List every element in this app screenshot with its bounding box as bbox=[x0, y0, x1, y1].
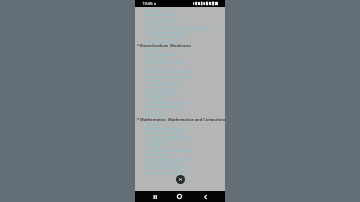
button[interactable]: Virology bbox=[135, 78, 225, 82]
staticText: Enzymes bbox=[147, 109, 162, 113]
button[interactable]: Applied Mathematics bbox=[135, 126, 225, 130]
staticText: Numerical Analysis bbox=[147, 161, 180, 165]
staticText: Computer Science Engg. bbox=[147, 30, 189, 34]
button[interactable]: Agricultural Biotechnology bbox=[135, 74, 225, 78]
button[interactable]: Genomics bbox=[135, 65, 225, 69]
button[interactable]: Enzymes bbox=[135, 109, 225, 113]
button[interactable]: Aerospace Engg. bbox=[135, 12, 225, 16]
staticText: Biochemistry bbox=[147, 56, 170, 60]
staticText: Physics bbox=[147, 8, 160, 12]
button[interactable]: Algebra bbox=[135, 122, 225, 126]
staticText: Molecular Biology (MB) bbox=[147, 60, 186, 64]
staticText: Genomics bbox=[147, 65, 164, 69]
button[interactable]: Differential Equations (DE) bbox=[135, 157, 225, 161]
staticText: Aerospace Engg. bbox=[147, 12, 176, 16]
staticText: Number Theory (NT) bbox=[147, 130, 182, 134]
staticText: Statistics and Data Science bbox=[147, 135, 192, 139]
staticText: Industrial Biotechnology bbox=[147, 100, 189, 104]
staticText: Differential Equations (DE) bbox=[147, 157, 192, 161]
button[interactable]: Structural Biology (S) bbox=[135, 82, 225, 86]
staticText: Mathematical Modelling bbox=[147, 170, 188, 174]
button[interactable]: Biotechnology, Biophysics bbox=[135, 43, 225, 47]
staticText: Medical Biotechnology (M) bbox=[147, 69, 192, 73]
button[interactable]: Number Theory (NT) bbox=[135, 130, 225, 134]
staticText: Bioinformatics (BI) bbox=[147, 87, 179, 91]
staticText: Virology bbox=[147, 78, 161, 82]
button[interactable]: Chemistry (C) bbox=[135, 21, 225, 25]
button[interactable]: Optimization bbox=[135, 152, 225, 156]
staticText: Biotechnology (B) bbox=[147, 52, 177, 56]
button[interactable]: Discrete Mathematics bbox=[135, 165, 225, 169]
button[interactable]: Immunology (I) bbox=[135, 91, 225, 95]
button[interactable]: Mathematical Modelling bbox=[135, 170, 225, 174]
button[interactable]: Home bbox=[174, 191, 185, 202]
staticText: Probability (P) bbox=[147, 139, 171, 143]
button[interactable]: Recent apps bbox=[149, 191, 160, 202]
staticText: Immunology (I) bbox=[147, 91, 174, 95]
staticText: Structural Biology (S) bbox=[147, 82, 183, 86]
staticText: Agricultural Biotechnology bbox=[147, 74, 192, 78]
button[interactable]: Bioinformatics (BI) bbox=[135, 87, 225, 91]
staticText: Mathematics, Mathematics and Computing bbox=[140, 117, 225, 121]
button[interactable]: Computational Biology bbox=[135, 104, 225, 108]
button[interactable]: Mathematics, Mathematics and Computing bbox=[135, 117, 225, 121]
staticText: Algebra bbox=[147, 122, 161, 126]
staticText: Computational Biology bbox=[147, 104, 186, 108]
button[interactable]: Biotechnology (B) bbox=[135, 52, 225, 56]
button[interactable]: Computing and Algorithms bbox=[135, 148, 225, 152]
staticText: Ocean Engg. and Naval bbox=[147, 34, 187, 38]
button[interactable]: Topology bbox=[135, 143, 225, 147]
staticText: Topology bbox=[147, 143, 163, 147]
staticText: Electronics and Electrical Comm. Engg. bbox=[147, 26, 213, 30]
button[interactable]: Civil Engineering (C) bbox=[135, 17, 225, 21]
button[interactable]: Numerical Analysis bbox=[135, 161, 225, 165]
staticText: Biology bbox=[147, 47, 160, 51]
button[interactable]: Molecular Biology (MB) bbox=[135, 60, 225, 64]
staticText: Biophysics bbox=[147, 113, 165, 117]
button[interactable]: Physics bbox=[135, 8, 225, 12]
button[interactable]: Statistics and Data Science bbox=[135, 135, 225, 139]
button[interactable]: Proteomics bbox=[135, 95, 225, 99]
button[interactable]: Ocean Engg. and Naval bbox=[135, 34, 225, 38]
staticText: Biotechnology, Biophysics bbox=[140, 43, 192, 47]
button[interactable]: Computer Science Engg. bbox=[135, 30, 225, 34]
button[interactable]: Biology bbox=[135, 47, 225, 51]
staticText: Computing and Algorithms bbox=[147, 148, 193, 152]
button[interactable]: Medical Biotechnology (M) bbox=[135, 69, 225, 73]
staticText: Proteomics bbox=[147, 95, 166, 99]
staticText: Optimization bbox=[147, 152, 169, 156]
button[interactable]: Close menu bbox=[176, 175, 185, 184]
button[interactable]: Industrial Biotechnology bbox=[135, 100, 225, 104]
staticText: 19:06 bbox=[142, 1, 153, 7]
staticText: Mining Engg. (MI) bbox=[147, 39, 177, 43]
staticText: Civil Engineering (C) bbox=[147, 17, 181, 21]
button[interactable]: Back bbox=[200, 191, 211, 202]
button[interactable]: Biochemistry bbox=[135, 56, 225, 60]
staticText: Discrete Mathematics bbox=[147, 165, 184, 169]
button[interactable]: Probability (P) bbox=[135, 139, 225, 143]
staticText: Chemistry (C) bbox=[147, 21, 170, 25]
staticText: Applied Mathematics bbox=[147, 126, 183, 130]
button[interactable]: Biophysics bbox=[135, 113, 225, 117]
button[interactable]: Mining Engg. (MI) bbox=[135, 39, 225, 43]
button[interactable]: Electronics and Electrical Comm. Engg. bbox=[135, 26, 225, 30]
